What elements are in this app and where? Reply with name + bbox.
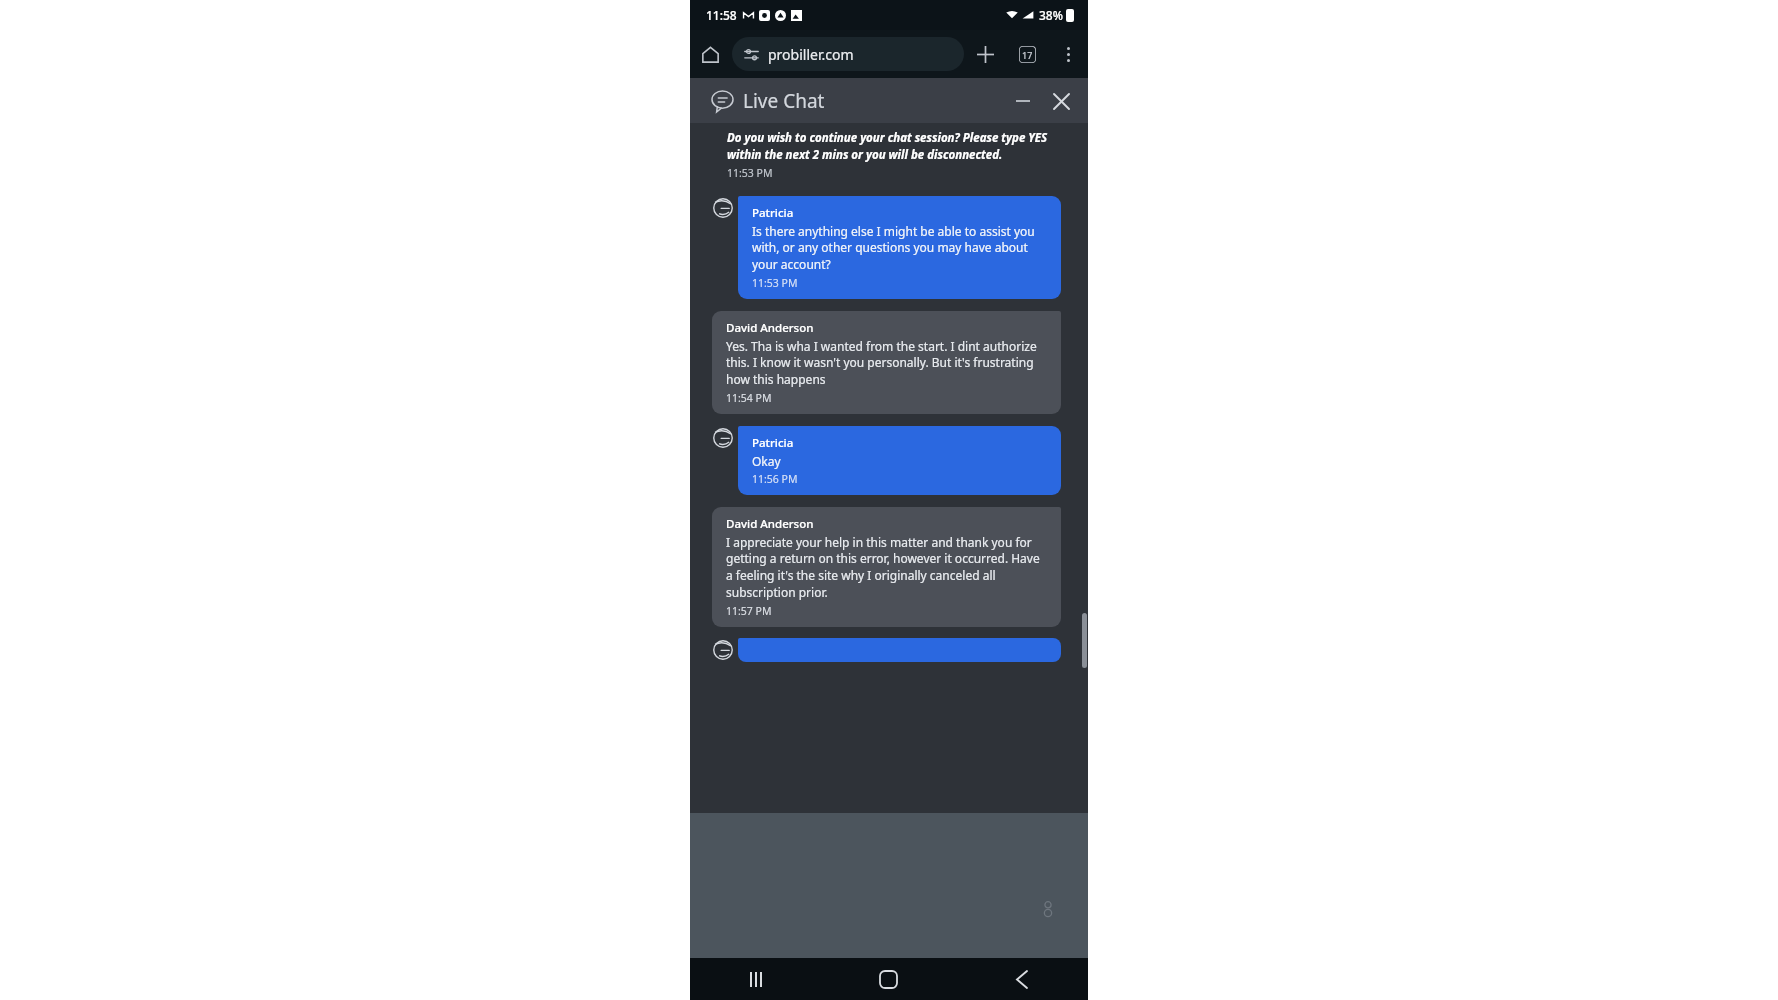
staticText: 11:58 [706, 7, 737, 23]
button[interactable]: New tab [964, 33, 1006, 75]
button[interactable]: David Anderson [712, 311, 1061, 414]
staticText: 11:54 PM [726, 391, 772, 405]
staticText: 11:56 PM [752, 472, 798, 486]
staticText: Is there anything else I might be able t… [752, 223, 1047, 273]
button[interactable]: Close [1044, 84, 1078, 118]
button[interactable]: Home [822, 958, 955, 1000]
staticText: Okay [752, 453, 781, 469]
staticText: Yes. Tha is wha I wanted from the start.… [726, 338, 1047, 388]
staticText: 11:53 PM [727, 166, 773, 180]
staticText: Do you wish to continue your chat sessio… [727, 130, 1058, 162]
button[interactable]: Patricia [738, 196, 1061, 299]
staticText: 11:53 PM [752, 276, 798, 290]
staticText: 11:57 PM [726, 604, 772, 618]
staticText: Patricia [752, 435, 794, 451]
button[interactable]: Patricia [738, 426, 1061, 495]
staticText: David Anderson [726, 320, 814, 336]
button[interactable] [738, 638, 1061, 662]
staticText: I appreciate your help in this matter an… [726, 534, 1047, 601]
staticText: Live Chat [743, 88, 825, 114]
button[interactable]: Tabs [1006, 33, 1048, 75]
button[interactable]: Home [690, 34, 730, 74]
staticText: Patricia [752, 205, 794, 221]
button[interactable]: Recents [690, 958, 822, 1000]
button[interactable]: David Anderson [712, 507, 1061, 627]
button[interactable]: probiller.com [732, 37, 964, 71]
staticText: 38% [1039, 7, 1063, 23]
staticText: David Anderson [726, 516, 814, 532]
button[interactable]: Back [955, 958, 1088, 1000]
button[interactable]: More options [1048, 34, 1088, 74]
staticText: probiller.com [768, 45, 854, 64]
button[interactable]: Minimize [1006, 84, 1040, 118]
staticText: 17 [1022, 49, 1033, 61]
